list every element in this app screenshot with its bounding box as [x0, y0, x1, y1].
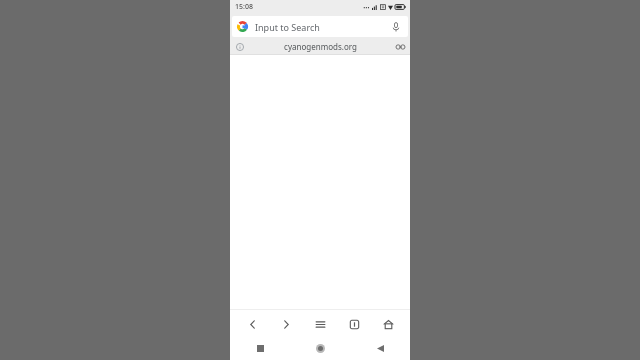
button[interactable]: Page info — [233, 40, 246, 53]
button[interactable]: cyanogenmods.org — [230, 39, 410, 54]
button[interactable]: Recents — [230, 337, 290, 360]
button[interactable]: Home — [290, 337, 350, 360]
staticText: cyanogenmods.org — [284, 41, 357, 52]
button[interactable]: Tabs — [342, 312, 366, 336]
button[interactable]: Input to Search — [232, 16, 408, 37]
staticText: Input to Search — [255, 21, 389, 33]
button[interactable]: Back — [240, 312, 264, 336]
button[interactable]: Voice search — [389, 20, 403, 34]
button[interactable]: Back — [350, 337, 410, 360]
button[interactable]: Copy link — [394, 40, 407, 53]
staticText: 15:08 — [235, 2, 253, 12]
button[interactable]: Home — [376, 312, 400, 336]
button[interactable]: Menu — [308, 312, 332, 336]
button[interactable]: Forward — [274, 312, 298, 336]
